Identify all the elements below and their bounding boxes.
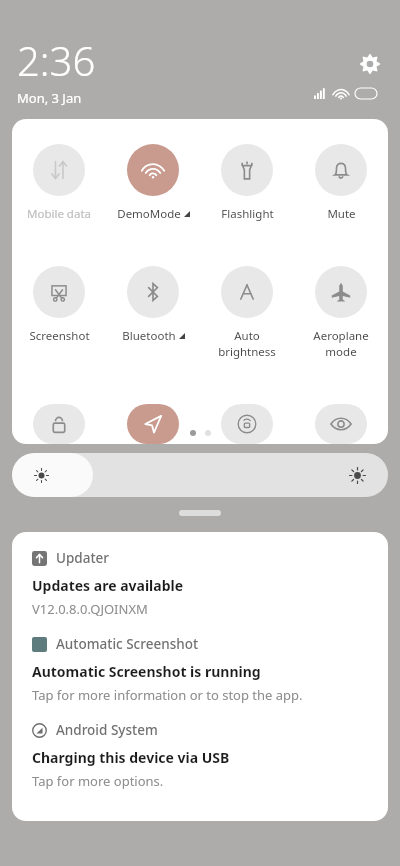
- staticText: Charging this device via USB: [32, 748, 230, 767]
- button[interactable]: Lock screen: [16, 404, 102, 444]
- button[interactable]: Reading mode: [298, 404, 384, 444]
- staticText: Auto brightness: [204, 328, 290, 360]
- button[interactable]: Aeroplane mode: [298, 266, 384, 360]
- button[interactable]: Flashlight: [204, 144, 290, 222]
- staticText: Updates are available: [32, 576, 184, 595]
- staticText: Mon, 3 Jan: [17, 89, 82, 107]
- button[interactable]: Auto brightness: [204, 266, 290, 360]
- button[interactable]: Brightness: [12, 453, 388, 497]
- staticText: Updater: [56, 549, 110, 567]
- staticText: Bluetooth: [122, 328, 176, 344]
- staticText: DemoMode: [117, 206, 181, 222]
- staticText: Tap for more information or to stop the …: [32, 686, 303, 704]
- staticText: 2:36: [17, 33, 96, 87]
- button[interactable]: Location: [110, 404, 196, 444]
- button[interactable]: Updater: [12, 532, 388, 618]
- button[interactable]: Android System: [12, 704, 388, 790]
- staticText: Flashlight: [221, 206, 274, 222]
- staticText: Screenshot: [29, 328, 90, 344]
- button[interactable]: Mute: [298, 144, 384, 222]
- staticText: Tap for more options.: [32, 772, 164, 790]
- button[interactable]: Bluetooth: [110, 266, 196, 344]
- staticText: Automatic Screenshot: [56, 635, 199, 653]
- button[interactable]: DemoMode: [110, 144, 196, 222]
- button[interactable]: Automatic Screenshot: [12, 618, 388, 704]
- staticText: Mute: [327, 206, 356, 222]
- staticText: V12.0.8.0.QJOINXM: [32, 600, 148, 618]
- button[interactable]: Rotate off: [204, 404, 290, 444]
- staticText: Automatic Screenshot is running: [32, 662, 261, 681]
- staticText: Android System: [56, 721, 158, 739]
- staticText: Aeroplane mode: [298, 328, 384, 360]
- staticText: Mobile data: [27, 206, 91, 222]
- button[interactable]: Settings: [357, 51, 383, 77]
- button[interactable]: Screenshot: [16, 266, 102, 344]
- button[interactable]: Mobile data: [16, 144, 102, 222]
